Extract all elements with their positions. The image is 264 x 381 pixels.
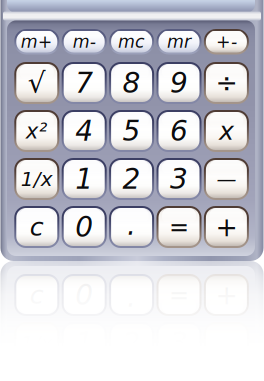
staticText: +- (216, 32, 237, 52)
button[interactable]: 1/x (14, 158, 59, 200)
button[interactable]: 0 (62, 274, 107, 316)
staticText: ÷ (215, 67, 237, 98)
staticText: x (219, 116, 234, 146)
staticText: — (216, 167, 236, 191)
staticText: 1 (75, 163, 93, 195)
staticText: mc (118, 32, 145, 52)
button[interactable]: 3 (156, 158, 201, 200)
staticText: . (127, 209, 136, 241)
button[interactable]: m- (62, 29, 107, 54)
button[interactable]: +- (204, 29, 249, 54)
staticText: 7 (75, 67, 93, 99)
staticText: 3 (170, 163, 188, 195)
staticText: 2 (123, 163, 141, 195)
staticText: + (215, 211, 237, 242)
button[interactable]: mr (156, 29, 201, 54)
staticText: 0 (75, 211, 93, 243)
staticText: 4 (75, 115, 93, 147)
button[interactable]: mc (109, 29, 154, 54)
staticText: c (30, 212, 44, 242)
staticText: 6 (170, 115, 188, 147)
staticText: 5 (123, 115, 141, 147)
button[interactable]: 0 (62, 206, 107, 248)
button[interactable]: . (109, 274, 154, 316)
staticText: x² (26, 119, 48, 143)
button[interactable]: x (204, 110, 249, 152)
button[interactable]: c (14, 274, 59, 316)
button[interactable]: = (156, 206, 201, 248)
button[interactable]: x² (14, 110, 59, 152)
staticText: = (169, 213, 189, 241)
staticText: 8 (123, 67, 141, 99)
button[interactable]: 7 (62, 62, 107, 104)
button[interactable]: 9 (156, 62, 201, 104)
button[interactable]: = (156, 274, 201, 316)
button[interactable]: 6 (156, 110, 201, 152)
button[interactable]: + (204, 274, 249, 316)
staticText: m- (73, 32, 96, 52)
button[interactable]: — (204, 158, 249, 200)
button[interactable]: 4 (62, 110, 107, 152)
button[interactable]: 5 (109, 110, 154, 152)
button[interactable]: m+ (14, 29, 59, 54)
staticText: mr (167, 32, 191, 52)
button[interactable]: . (109, 206, 154, 248)
button[interactable]: √ (14, 62, 59, 104)
button[interactable]: ÷ (204, 62, 249, 104)
staticText: 1/x (21, 167, 53, 191)
staticText: √ (28, 67, 46, 99)
staticText: 9 (170, 67, 188, 99)
button[interactable]: c (14, 206, 59, 248)
button[interactable]: 8 (109, 62, 154, 104)
button[interactable]: 2 (109, 158, 154, 200)
staticText: 0 (75, 279, 93, 311)
button[interactable]: + (204, 206, 249, 248)
button[interactable]: 1 (62, 158, 107, 200)
staticText: m+ (21, 32, 53, 52)
